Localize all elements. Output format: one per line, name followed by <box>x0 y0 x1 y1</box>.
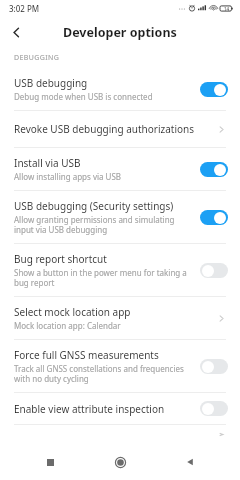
button[interactable]: Toggle on <box>200 210 228 225</box>
button[interactable]: Toggle off <box>200 359 228 374</box>
button[interactable]: USB debugging <box>0 68 240 110</box>
staticText: Developer options <box>63 24 177 41</box>
staticText: 3:02 PM <box>9 3 40 14</box>
staticText: Revoke USB debugging authorizations <box>14 122 195 136</box>
staticText: Allow granting permissions and simulatin… <box>14 214 192 235</box>
staticText: Select mock location app <box>14 305 131 319</box>
staticText: Install via USB <box>14 156 81 170</box>
staticText: Enable view attribute inspection <box>14 402 165 416</box>
staticText: USB debugging <box>14 76 88 90</box>
staticText: Show a button in the power menu for taki… <box>14 267 192 288</box>
staticText: USB debugging (Security settings) <box>14 199 174 213</box>
button[interactable]: Toggle on <box>200 162 228 177</box>
staticText: Mock location app: Calendar <box>14 320 121 331</box>
staticText: Force full GNSS measurements <box>14 348 159 362</box>
button[interactable]: Install via USB <box>0 148 240 190</box>
staticText: Bug report shortcut <box>14 252 107 266</box>
staticText: Allow installing apps via USB <box>14 171 122 182</box>
button[interactable]: Toggle on <box>200 82 228 97</box>
staticText: Debug mode when USB is connected <box>14 91 153 102</box>
button[interactable]: Select mock location app <box>0 297 240 339</box>
button[interactable]: Recent apps <box>30 444 70 480</box>
staticText: Track all GNSS constellations and freque… <box>14 363 192 384</box>
button[interactable]: Enable view attribute inspection <box>0 393 240 424</box>
button[interactable]: Force full GNSS measurements <box>0 340 240 392</box>
button[interactable]: Back <box>170 444 210 480</box>
button[interactable]: Toggle off <box>200 263 228 278</box>
button[interactable]: Toggle off <box>200 401 228 416</box>
button[interactable]: Bug report shortcut <box>0 244 240 296</box>
button[interactable]: Back <box>0 16 32 48</box>
button[interactable]: Revoke USB debugging authorizations <box>0 111 240 147</box>
staticText: DEBUGGING <box>14 53 60 63</box>
staticText: 14 <box>224 6 230 12</box>
button[interactable]: Home <box>100 444 140 480</box>
button[interactable]: USB debugging (Security settings) <box>0 191 240 243</box>
